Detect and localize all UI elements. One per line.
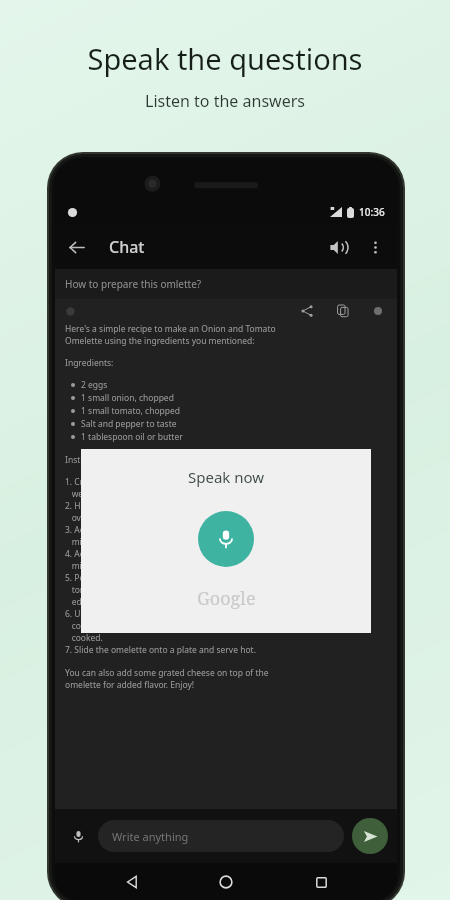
staticText: 6. Using a spatula, fold the omelette in… [65,608,274,620]
button[interactable]: Home [208,864,244,900]
staticText: Salt and pepper to taste [81,418,177,430]
staticText: 3. Add the chopped onions and saute for … [65,524,235,536]
staticText: Chat [109,236,145,258]
staticText: Write anything [112,829,189,844]
button[interactable]: Recents [303,864,339,900]
button[interactable]: Back [55,226,97,268]
staticText: Google [197,586,256,611]
staticText: Here's a simple recipe to make an Onion … [65,323,276,347]
staticText: 1 small tomato, chopped [81,405,181,417]
staticText: How to prepare this omlette? [65,277,202,291]
staticText: Ingredients: [65,357,114,369]
staticText: Speak now [188,467,265,487]
staticText: 1. Crack the eggs into a bowl and whisk … [65,476,246,488]
button[interactable]: Microphone [198,511,254,567]
staticText: 7. Slide the omelette onto a plate and s… [65,644,256,656]
staticText: minute or two until they soften. [65,560,198,572]
staticText: tomatoes. Let it cook for a minute or tw… [65,584,270,596]
staticText: well with a pinch of salt and pepper. [65,488,215,500]
button[interactable]: Write anything [98,820,344,852]
staticText: edges start to set. [65,596,144,608]
staticText: cooked. [65,632,103,644]
staticText: You can also add some grated cheese on t… [65,667,269,691]
button[interactable]: Speaker [317,227,357,267]
staticText: 5. Pour the whisked eggs over the onions… [65,572,248,584]
staticText: Instructions: [65,454,116,466]
staticText: 1 small onion, chopped [81,392,174,404]
button[interactable]: Voice input [64,822,92,850]
button[interactable]: Share [299,303,315,319]
button[interactable]: Like [371,304,385,318]
staticText: 4. Add the chopped tomatoes and cook for… [65,548,243,560]
button[interactable]: Back [114,864,150,900]
staticText: 10:36 [359,205,385,219]
staticText: 2 eggs [81,379,108,391]
staticText: over medium heat. [65,512,148,524]
button[interactable]: Send [352,818,388,854]
button[interactable]: More options [357,229,393,265]
staticText: Listen to the answers [145,90,305,112]
staticText: 1 tablespoon oil or butter [81,431,183,443]
button[interactable]: Copy [335,303,351,319]
staticText: 2. Heat the oil or butter in a non-stick… [65,500,231,512]
staticText: Speak the questions [87,39,363,78]
staticText: minute until translucent. [65,536,170,548]
staticText: cook for another minute or until the egg… [65,620,272,632]
